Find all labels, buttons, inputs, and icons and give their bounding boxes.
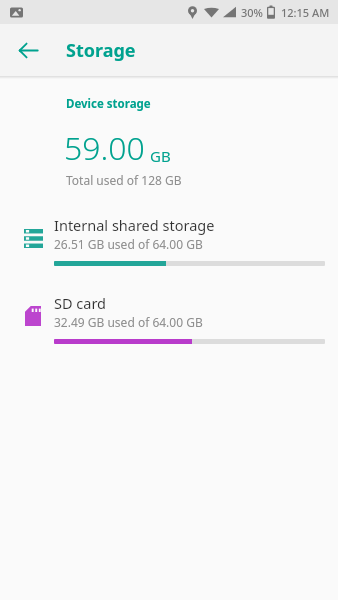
staticText: 26.51 GB used of 64.00 GB — [54, 236, 203, 252]
staticText: Storage — [66, 38, 136, 63]
staticText: Total used of 128 GB — [66, 172, 182, 188]
button[interactable]: Back — [11, 33, 45, 67]
staticText: 59.00 — [64, 126, 145, 170]
staticText: Device storage — [66, 96, 151, 112]
button[interactable]: Internal shared storage — [0, 207, 338, 274]
staticText: SD card — [54, 293, 107, 313]
staticText: Internal shared storage — [54, 215, 215, 235]
staticText: 30% — [241, 5, 263, 20]
button[interactable]: SD card — [0, 285, 338, 352]
staticText: GB — [150, 146, 171, 166]
staticText: 12:15 AM — [281, 5, 330, 20]
staticText: 32.49 GB used of 64.00 GB — [54, 314, 203, 330]
